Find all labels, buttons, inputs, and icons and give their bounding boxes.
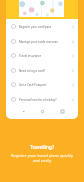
button[interactable]: Travel insurance [6,48,78,63]
button[interactable]: Register your card/pass [6,19,78,34]
staticText: Personal loan for a holiday? [19,98,71,102]
button[interactable]: Manage your cards overseas [6,34,78,49]
button[interactable]: Back [20,108,26,114]
staticText: Travel insurance [19,54,71,58]
button[interactable]: Get a Cash Passport [6,77,78,92]
button[interactable]: Personal loan for a holiday? [6,92,78,107]
staticText: Need to log a card? [19,69,71,73]
button[interactable]: Recents [59,108,65,114]
staticText: Travelling? [30,144,54,150]
staticText: Manage your cards overseas [19,40,71,44]
staticText: Register your card/pass [19,25,71,29]
button[interactable]: Home [39,108,45,114]
button[interactable]: Need to log a card? [6,63,78,78]
staticText: Register your travel plans quickly and e… [8,153,76,163]
staticText: Get a Cash Passport [19,83,71,87]
